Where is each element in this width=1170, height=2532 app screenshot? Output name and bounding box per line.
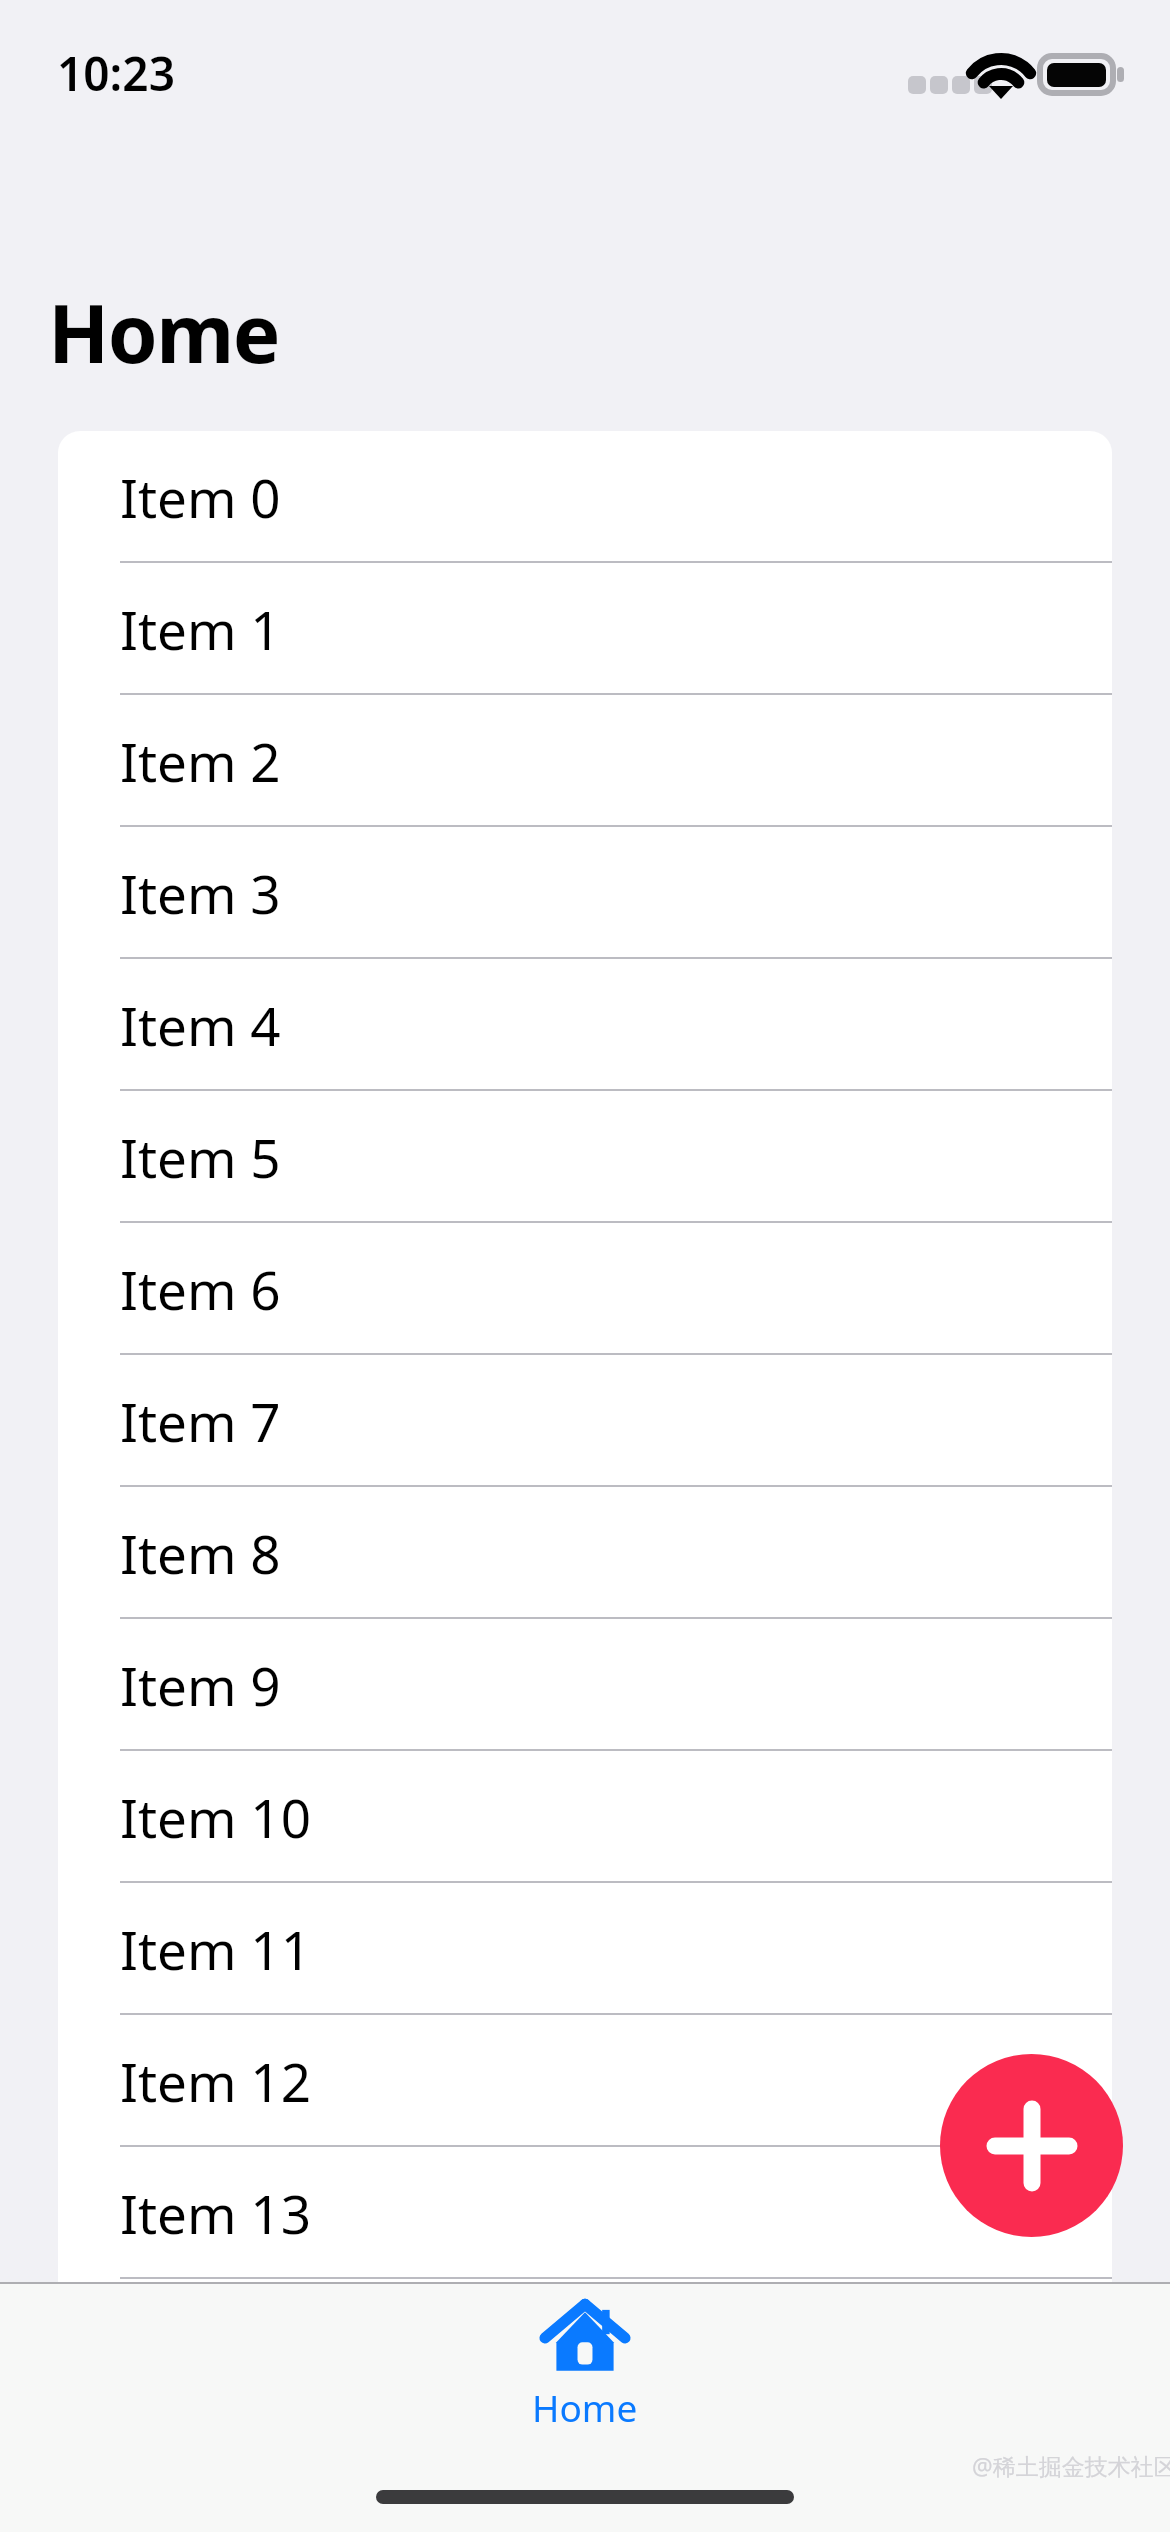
staticText: Item 4	[120, 989, 281, 1061]
button[interactable]: Add	[940, 2054, 1123, 2237]
staticText: Item 8	[120, 1517, 281, 1589]
button[interactable]: Item 13	[58, 2147, 1112, 2279]
button[interactable]: Item 9	[58, 1619, 1112, 1751]
button[interactable]: Item 11	[58, 1883, 1112, 2015]
staticText: Item 0	[120, 461, 281, 533]
button[interactable]: Item 12	[58, 2015, 1112, 2147]
staticText: @稀土掘金技术社区	[972, 2450, 1170, 2481]
staticText: Item 9	[120, 1649, 281, 1721]
staticText: Item 11	[120, 1913, 311, 1985]
staticText: Home	[48, 277, 279, 386]
button[interactable]: Item 3	[58, 827, 1112, 959]
button[interactable]: Item 8	[58, 1487, 1112, 1619]
staticText: Item 2	[120, 725, 281, 797]
button[interactable]: Item 1	[58, 563, 1112, 695]
staticText: Item 13	[120, 2177, 311, 2249]
button[interactable]: Item 10	[58, 1751, 1112, 1883]
staticText: 10:23	[57, 42, 175, 105]
button[interactable]: Item 4	[58, 959, 1112, 1091]
button[interactable]: Item 0	[58, 431, 1112, 563]
staticText: Item 1	[120, 593, 281, 665]
staticText: Item 12	[120, 2045, 311, 2117]
staticText: Home	[532, 2382, 638, 2432]
staticText: Item 5	[120, 1121, 281, 1193]
button[interactable]: Item 5	[58, 1091, 1112, 1223]
button[interactable]: Home	[465, 2300, 705, 2432]
staticText: Item 6	[120, 1253, 281, 1325]
button[interactable]: Item 6	[58, 1223, 1112, 1355]
button[interactable]: Item 7	[58, 1355, 1112, 1487]
staticText: Item 7	[120, 1385, 281, 1457]
staticText: Item 10	[120, 1781, 311, 1853]
staticText: Item 3	[120, 857, 281, 929]
button[interactable]: Item 2	[58, 695, 1112, 827]
